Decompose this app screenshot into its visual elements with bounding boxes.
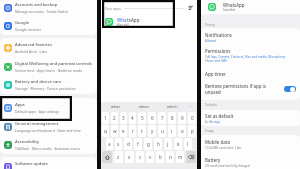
button[interactable]: f [134, 138, 142, 150]
button[interactable]: 4 [129, 112, 136, 124]
button[interactable]: Permissions [201, 44, 300, 68]
button[interactable]: 9 [178, 112, 186, 124]
staticText: Accessibility [15, 139, 39, 145]
staticText: Mobile data [205, 139, 230, 145]
button[interactable]: Advanced features [0, 38, 97, 57]
button[interactable]: 1 [102, 112, 109, 124]
staticText: when [139, 104, 149, 109]
button[interactable]: g [144, 138, 152, 150]
staticText: 2 [113, 115, 116, 121]
button[interactable]: Mobile data [201, 135, 300, 153]
button[interactable]: More suggestions [186, 102, 197, 111]
staticText: 5 [141, 115, 144, 121]
staticText: 7 [161, 115, 164, 121]
button[interactable]: b [156, 151, 164, 163]
staticText: Google services [15, 27, 41, 32]
button[interactable]: d [124, 138, 132, 150]
button[interactable]: General management [0, 117, 97, 136]
staticText: y [151, 128, 154, 134]
button[interactable]: Battery and device care [0, 76, 97, 94]
staticText: 3 [122, 115, 125, 121]
staticText: Advanced features [15, 42, 52, 48]
staticText: 1 [104, 115, 107, 121]
button[interactable]: Remove permissions if app is unused [201, 80, 300, 100]
staticText: u [161, 128, 164, 134]
button[interactable]: 5 [138, 112, 146, 124]
button[interactable]: Accessibility [0, 136, 97, 154]
button[interactable]: n [166, 151, 174, 163]
staticText: Software update [15, 161, 48, 167]
staticText: 6 [151, 115, 154, 121]
staticText: z [117, 154, 120, 160]
button[interactable]: 3 [120, 112, 127, 124]
button[interactable]: u [158, 125, 166, 137]
staticText: i [171, 128, 173, 134]
staticText: Accounts and backup [15, 2, 58, 8]
staticText: e [122, 128, 125, 134]
button[interactable]: p [188, 125, 196, 137]
button[interactable]: 6 [148, 112, 156, 124]
button[interactable]: i [168, 125, 176, 137]
button[interactable]: t [138, 125, 146, 137]
button[interactable]: c [136, 151, 144, 163]
button[interactable]: h [154, 138, 162, 150]
button[interactable]: Software update [0, 157, 97, 169]
button[interactable]: e [120, 125, 127, 137]
button[interactable]: Google [0, 17, 97, 35]
button[interactable]: Accounts and backup [0, 0, 97, 17]
staticText: Google [15, 20, 30, 26]
button[interactable]: Backspace [186, 151, 196, 163]
staticText: p [191, 128, 194, 134]
staticText: g [147, 141, 150, 147]
staticText: which [167, 104, 178, 109]
staticText: Usage [205, 129, 214, 133]
button[interactable]: Set as default [201, 110, 300, 126]
button[interactable]: Apps [0, 98, 97, 117]
button[interactable]: x [125, 151, 134, 163]
button[interactable]: l [184, 138, 192, 150]
button[interactable]: m [176, 151, 184, 163]
button[interactable]: App timer [201, 68, 300, 80]
staticText: l [187, 141, 189, 147]
staticText: 0 [191, 115, 194, 121]
button[interactable]: what [101, 102, 130, 111]
button[interactable]: s [115, 138, 122, 150]
staticText: w [113, 128, 117, 134]
staticText: 19.34 MB used since 1 Jan [205, 146, 242, 150]
button[interactable]: 2 [111, 112, 118, 124]
staticText: WhatsApp [223, 2, 245, 8]
staticText: ⋯ [189, 104, 194, 109]
button[interactable]: y [148, 125, 156, 137]
staticText: Defaults [205, 103, 217, 107]
staticText: r [132, 128, 134, 134]
staticText: b [159, 154, 162, 160]
button[interactable]: 7 [158, 112, 166, 124]
button[interactable]: k [174, 138, 182, 150]
button[interactable]: when [130, 102, 158, 111]
button[interactable]: 8 [168, 112, 176, 124]
button[interactable]: Sort [188, 5, 194, 11]
button[interactable]: Notifications [201, 28, 300, 44]
button[interactable]: Digital Wellbeing and parental controls [0, 57, 97, 76]
staticText: Apps [15, 102, 25, 108]
button[interactable]: o [178, 125, 186, 137]
button[interactable]: Shift [102, 151, 112, 163]
staticText: v [149, 154, 152, 160]
button[interactable]: 0 [188, 112, 196, 124]
button[interactable]: Wha [101, 15, 197, 28]
staticText: 9 [181, 115, 184, 121]
button[interactable]: a [106, 138, 113, 150]
staticText: d [127, 141, 130, 147]
button[interactable]: r [129, 125, 136, 137]
button[interactable]: w [111, 125, 118, 137]
button[interactable]: z [114, 151, 123, 163]
button[interactable]: q [102, 125, 109, 137]
button[interactable]: Battery [201, 153, 300, 169]
staticText: m [178, 154, 183, 160]
button[interactable]: j [164, 138, 172, 150]
staticText: Your apps [105, 6, 121, 11]
button[interactable]: which [158, 102, 186, 111]
button[interactable]: v [146, 151, 154, 163]
staticText: Allowed [205, 39, 217, 43]
